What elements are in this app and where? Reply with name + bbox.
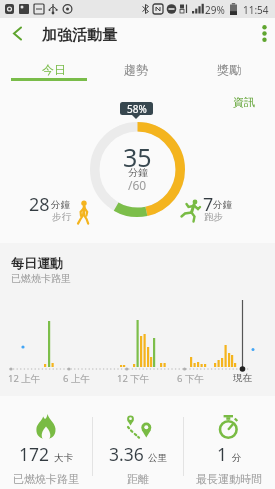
staticText: 距離 (127, 472, 149, 486)
staticText: 1 (217, 442, 228, 466)
staticText: 12 上午 (8, 372, 41, 385)
button[interactable] (253, 18, 275, 48)
staticText: 分鐘 (128, 166, 148, 179)
staticText: 今日 (42, 62, 66, 77)
staticText: 35 (123, 140, 152, 170)
staticText: 58% (127, 102, 147, 115)
staticText: 6 下午 (177, 372, 204, 385)
staticText: 跑步 (204, 211, 223, 223)
staticText: 加強活動量 (42, 26, 117, 45)
staticText: 28 (29, 192, 50, 217)
staticText: 分鐘 (213, 199, 232, 211)
staticText: 現在 (233, 372, 252, 384)
button[interactable]: 1 (183, 396, 275, 489)
staticText: 趨勢 (124, 62, 148, 77)
button[interactable] (184, 48, 275, 81)
staticText: 每日運動 (11, 255, 63, 271)
staticText: 3.36 (109, 442, 144, 466)
staticText: 29% (205, 3, 225, 17)
staticText: /60 (128, 177, 147, 193)
staticText: 12 下午 (117, 372, 150, 385)
staticText: 步行 (52, 211, 71, 223)
staticText: 7 (203, 192, 214, 217)
staticText: 已燃燒卡路里 (11, 272, 71, 285)
staticText: 11:54 (243, 3, 269, 17)
button[interactable] (0, 48, 92, 81)
staticText: 大卡 (54, 452, 73, 464)
staticText: 公里 (148, 452, 167, 464)
staticText: 已燃燒卡路里 (13, 472, 79, 486)
button[interactable]: 資訊 (233, 95, 255, 109)
button[interactable] (92, 48, 184, 81)
staticText: 最長運動時間 (196, 472, 262, 486)
staticText: 獎勵 (217, 62, 241, 77)
button[interactable]: 172 (0, 396, 92, 489)
staticText: 172 (19, 442, 50, 466)
staticText: 分 (232, 452, 242, 464)
button[interactable] (0, 18, 34, 48)
staticText: 6 上午 (63, 372, 90, 385)
button[interactable]: 3.36 (92, 396, 184, 489)
staticText: 分鐘 (51, 199, 70, 211)
